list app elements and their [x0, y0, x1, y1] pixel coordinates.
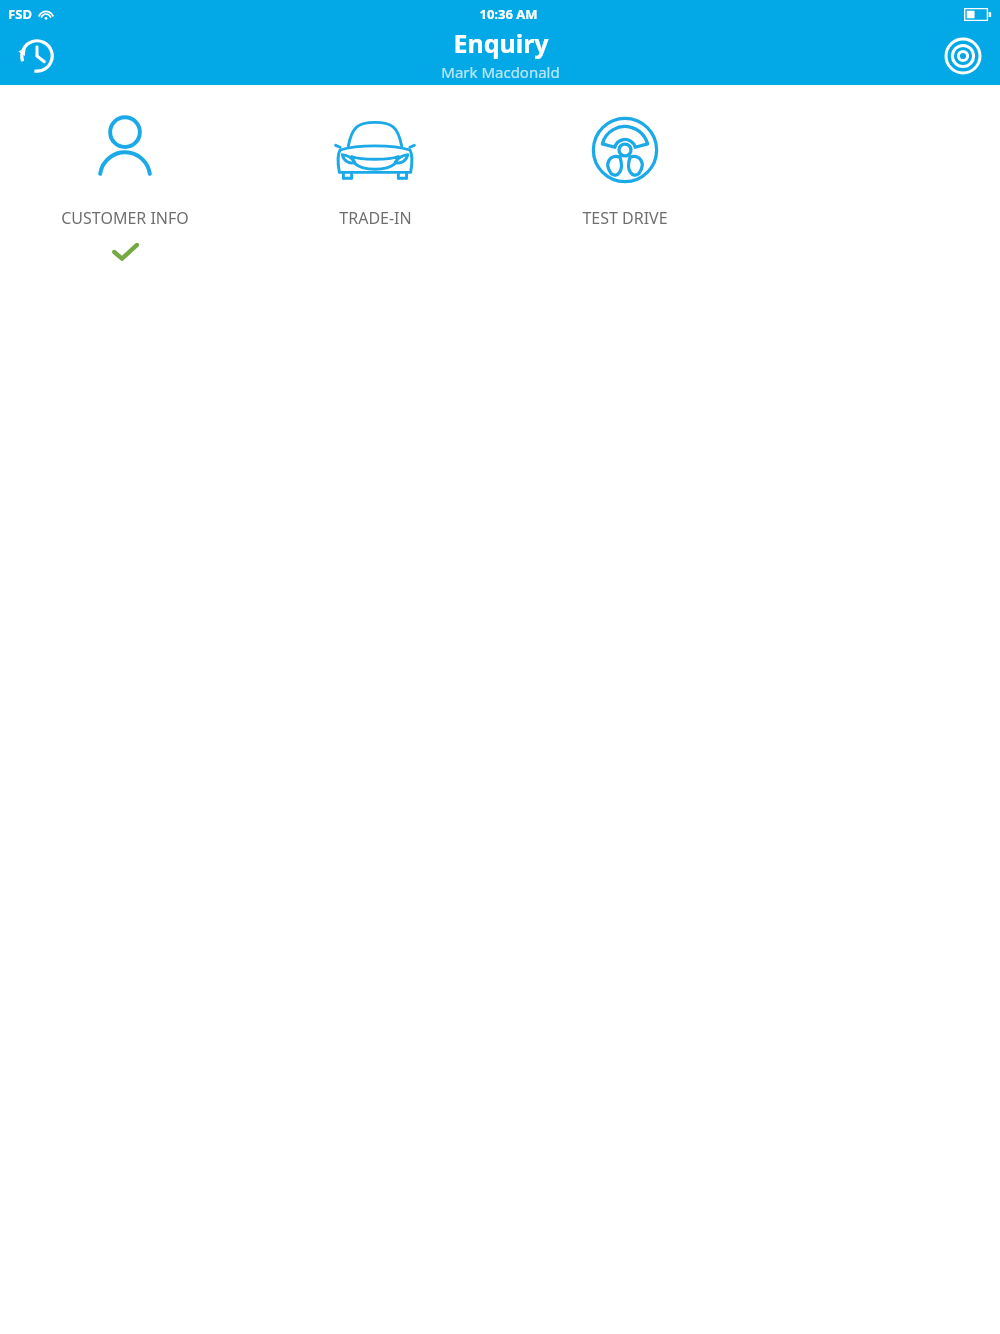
staticText: Mark Macdonald — [441, 62, 560, 82]
staticText: FSD — [8, 5, 32, 23]
button[interactable]: TEST DRIVE — [500, 85, 750, 241]
button[interactable]: History — [12, 31, 62, 81]
button[interactable]: Target — [938, 31, 988, 81]
staticText: TEST DRIVE — [582, 207, 668, 229]
staticText: CUSTOMER INFO — [61, 207, 189, 229]
staticText: 10:36 AM — [479, 5, 538, 23]
staticText: TRADE-IN — [339, 207, 412, 229]
staticText: Enquiry — [453, 26, 549, 60]
button[interactable]: CUSTOMER INFO — [0, 85, 250, 263]
button[interactable]: TRADE-IN — [250, 85, 500, 241]
